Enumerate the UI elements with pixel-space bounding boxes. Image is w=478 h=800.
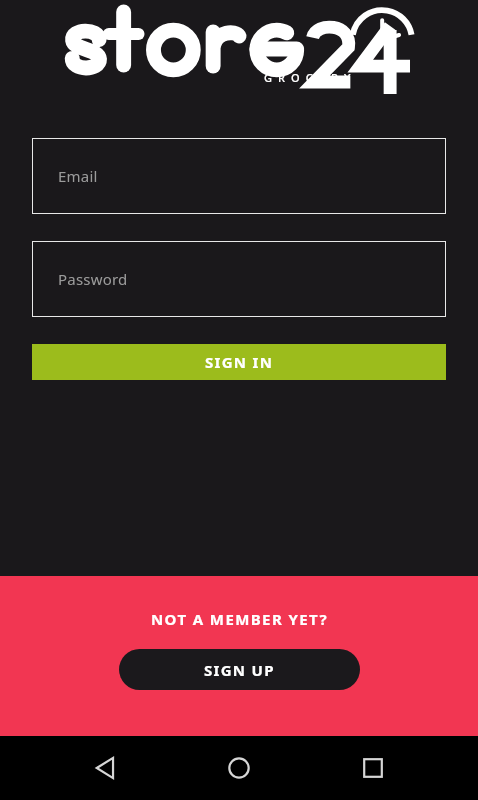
staticText: G R O C E R Y	[264, 70, 353, 85]
staticText: Email	[58, 166, 98, 186]
button[interactable]: Email	[32, 138, 446, 214]
button[interactable]: SIGN IN	[32, 344, 446, 380]
staticText: Password	[58, 269, 128, 289]
button[interactable]: Home	[211, 740, 267, 796]
staticText: SIGN UP	[204, 660, 275, 680]
button[interactable]: Back	[78, 740, 134, 796]
staticText: NOT A MEMBER YET?	[151, 609, 328, 629]
staticText: SIGN IN	[205, 352, 274, 372]
button[interactable]: Password	[32, 241, 446, 317]
button[interactable]: Recent apps	[345, 740, 401, 796]
button[interactable]: SIGN UP	[119, 649, 360, 690]
